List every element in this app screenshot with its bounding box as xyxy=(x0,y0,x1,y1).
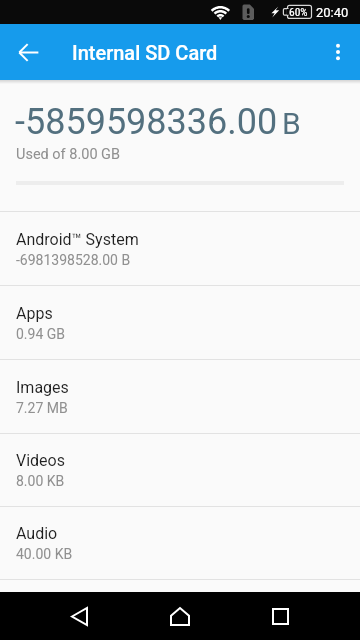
staticText: 8.00 KB xyxy=(16,473,65,489)
button[interactable]: Android™ System xyxy=(0,212,360,285)
staticText: Used of 8.00 GB xyxy=(16,146,121,163)
staticText: 60% xyxy=(289,5,308,18)
staticText: Android™ System xyxy=(16,230,139,249)
button[interactable]: More options xyxy=(316,30,360,74)
staticText: Apps xyxy=(16,304,53,323)
button[interactable]: Audio xyxy=(0,507,360,579)
button[interactable]: Videos xyxy=(0,434,360,506)
staticText: 40.00 KB xyxy=(16,546,73,562)
staticText: Audio xyxy=(16,524,58,543)
staticText: 0.94 GB xyxy=(16,326,66,342)
button[interactable]: Apps xyxy=(0,286,360,359)
button[interactable]: Recents xyxy=(240,592,320,640)
staticText: -6981398528.00 B xyxy=(16,252,131,268)
staticText: 20:40 xyxy=(316,5,349,20)
button[interactable]: Home xyxy=(140,592,220,640)
staticText: Images xyxy=(16,378,69,397)
staticText: -5859598336.00 xyxy=(15,101,278,143)
button[interactable]: Images xyxy=(0,360,360,433)
staticText: B xyxy=(282,106,301,141)
button[interactable]: Back xyxy=(4,28,52,76)
staticText: 7.27 MB xyxy=(16,400,68,416)
button[interactable]: Back xyxy=(39,592,119,640)
staticText: Videos xyxy=(16,451,65,470)
staticText: Internal SD Card xyxy=(72,41,218,64)
